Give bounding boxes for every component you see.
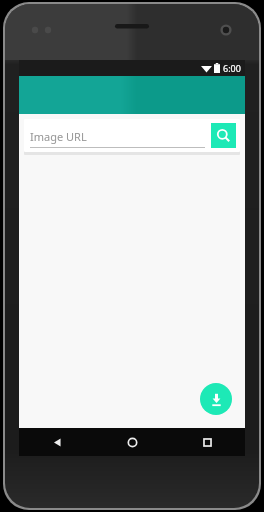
- button[interactable]: Home: [95, 428, 170, 456]
- button[interactable]: [19, 76, 245, 114]
- button[interactable]: Image URL: [30, 124, 205, 148]
- button[interactable]: Back: [19, 428, 95, 456]
- button[interactable]: Search: [211, 123, 236, 148]
- staticText: Image URL: [30, 129, 87, 144]
- button[interactable]: Recent apps: [170, 428, 245, 456]
- staticText: 6:00: [223, 62, 241, 74]
- button[interactable]: Download: [200, 383, 232, 415]
